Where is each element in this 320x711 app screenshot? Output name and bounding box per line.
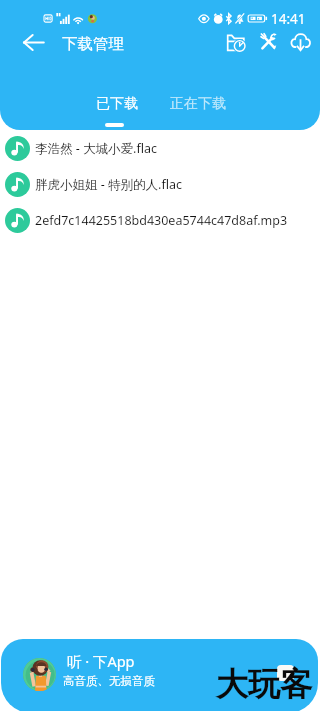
staticText: 大玩客 [216,664,312,704]
staticText: 下载管理 [62,34,124,54]
staticText: 听 · 下App [67,651,135,671]
staticText: 高音质、无损音质 [63,674,155,688]
button[interactable]: Tools [254,27,282,55]
button[interactable]: 正在下载 [168,93,228,125]
staticText: 正在下载 [170,95,226,113]
button[interactable]: Back [19,28,47,56]
button[interactable]: 2efd7c14425518bd430ea5744c47d8af.mp3 [0,202,320,238]
staticText: 胖虎小姐姐 - 特别的人.flac [35,176,182,193]
staticText: 李浩然 - 大城小爱.flac [35,140,157,157]
button[interactable]: Download [286,27,314,55]
staticText: 2efd7c14425518bd430ea5744c47d8af.mp3 [35,212,288,229]
button[interactable]: 胖虎小姐姐 - 特别的人.flac [0,166,320,202]
button[interactable]: 李浩然 - 大城小爱.flac [0,130,320,166]
staticText: 已下载 [96,95,138,113]
button[interactable]: 听 · 下App [1,639,318,711]
staticText: 14:41 [271,10,306,28]
button[interactable]: Download history [221,28,249,56]
button[interactable]: 已下载 [94,93,140,129]
